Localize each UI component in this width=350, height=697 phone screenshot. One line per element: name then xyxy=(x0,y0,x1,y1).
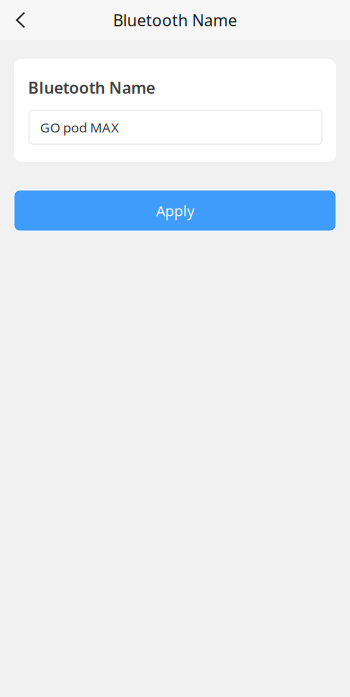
staticText: Bluetooth Name xyxy=(113,9,237,31)
button[interactable]: GO pod MAX xyxy=(29,110,322,144)
staticText: Apply xyxy=(156,201,194,220)
staticText: Bluetooth Name xyxy=(28,77,155,98)
staticText: GO pod MAX xyxy=(40,118,119,136)
button[interactable]: Apply xyxy=(13,189,337,232)
button[interactable]: Back xyxy=(0,0,48,40)
